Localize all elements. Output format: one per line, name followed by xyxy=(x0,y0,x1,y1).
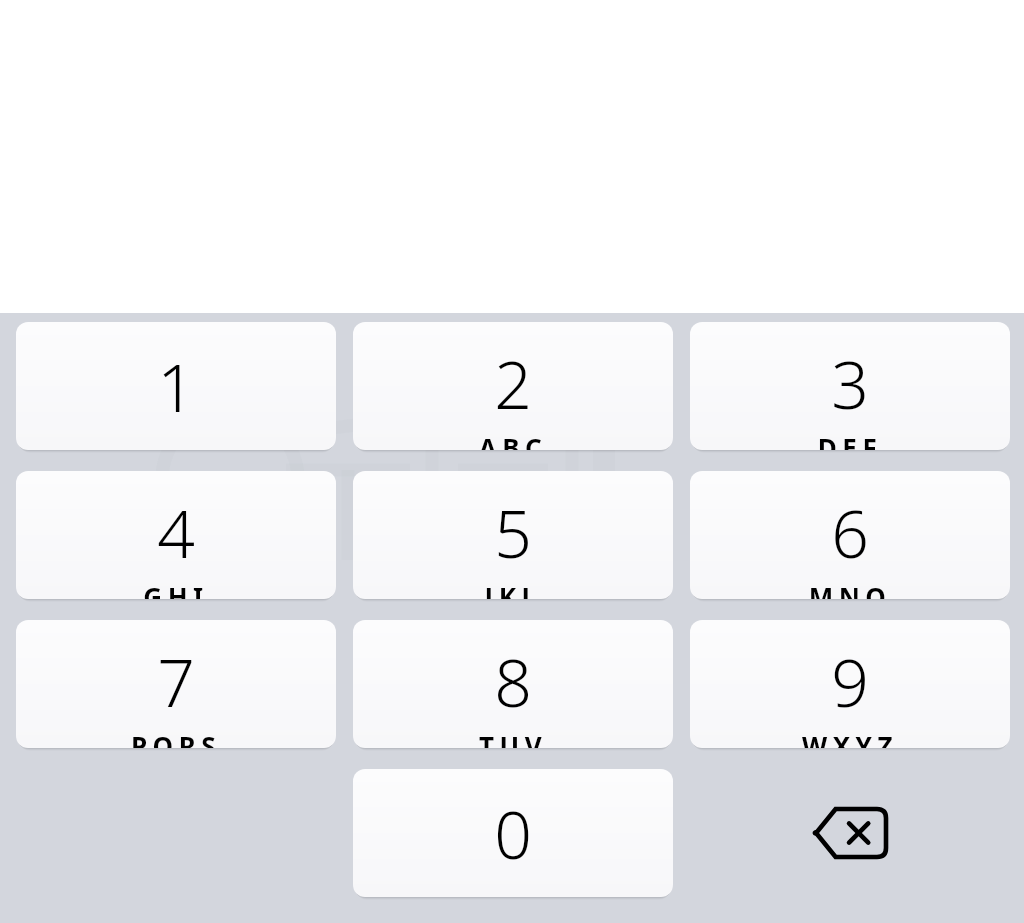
staticText: 1 xyxy=(16,341,336,431)
staticText: PQRS xyxy=(16,728,336,748)
staticText: GHI xyxy=(16,579,336,599)
staticText: JKL xyxy=(353,579,673,599)
button[interactable]: 2 xyxy=(353,322,673,450)
button[interactable]: 9 xyxy=(690,620,1010,748)
button[interactable]: 1 xyxy=(16,322,336,450)
button[interactable]: Backspace xyxy=(690,769,1010,897)
staticText: 3 xyxy=(690,338,1010,428)
staticText: 5 xyxy=(353,487,673,577)
button[interactable]: 3 xyxy=(690,322,1010,450)
staticText: 0 xyxy=(353,788,673,878)
staticText: 7 xyxy=(16,636,336,726)
staticText: TUV xyxy=(353,728,673,748)
staticText: 9 xyxy=(690,636,1010,726)
staticText: 6 xyxy=(690,487,1010,577)
button[interactable]: 6 xyxy=(690,471,1010,599)
staticText: MNO xyxy=(690,579,1010,599)
staticText: 8 xyxy=(353,636,673,726)
button[interactable]: 4 xyxy=(16,471,336,599)
button[interactable]: 7 xyxy=(16,620,336,748)
button[interactable]: 5 xyxy=(353,471,673,599)
staticText: 4 xyxy=(16,487,336,577)
staticText: DEF xyxy=(690,430,1010,450)
button[interactable]: 0 xyxy=(353,769,673,897)
staticText: 2 xyxy=(353,338,673,428)
staticText: ABC xyxy=(353,430,673,450)
staticText: WXYZ xyxy=(690,728,1010,748)
button[interactable]: 8 xyxy=(353,620,673,748)
